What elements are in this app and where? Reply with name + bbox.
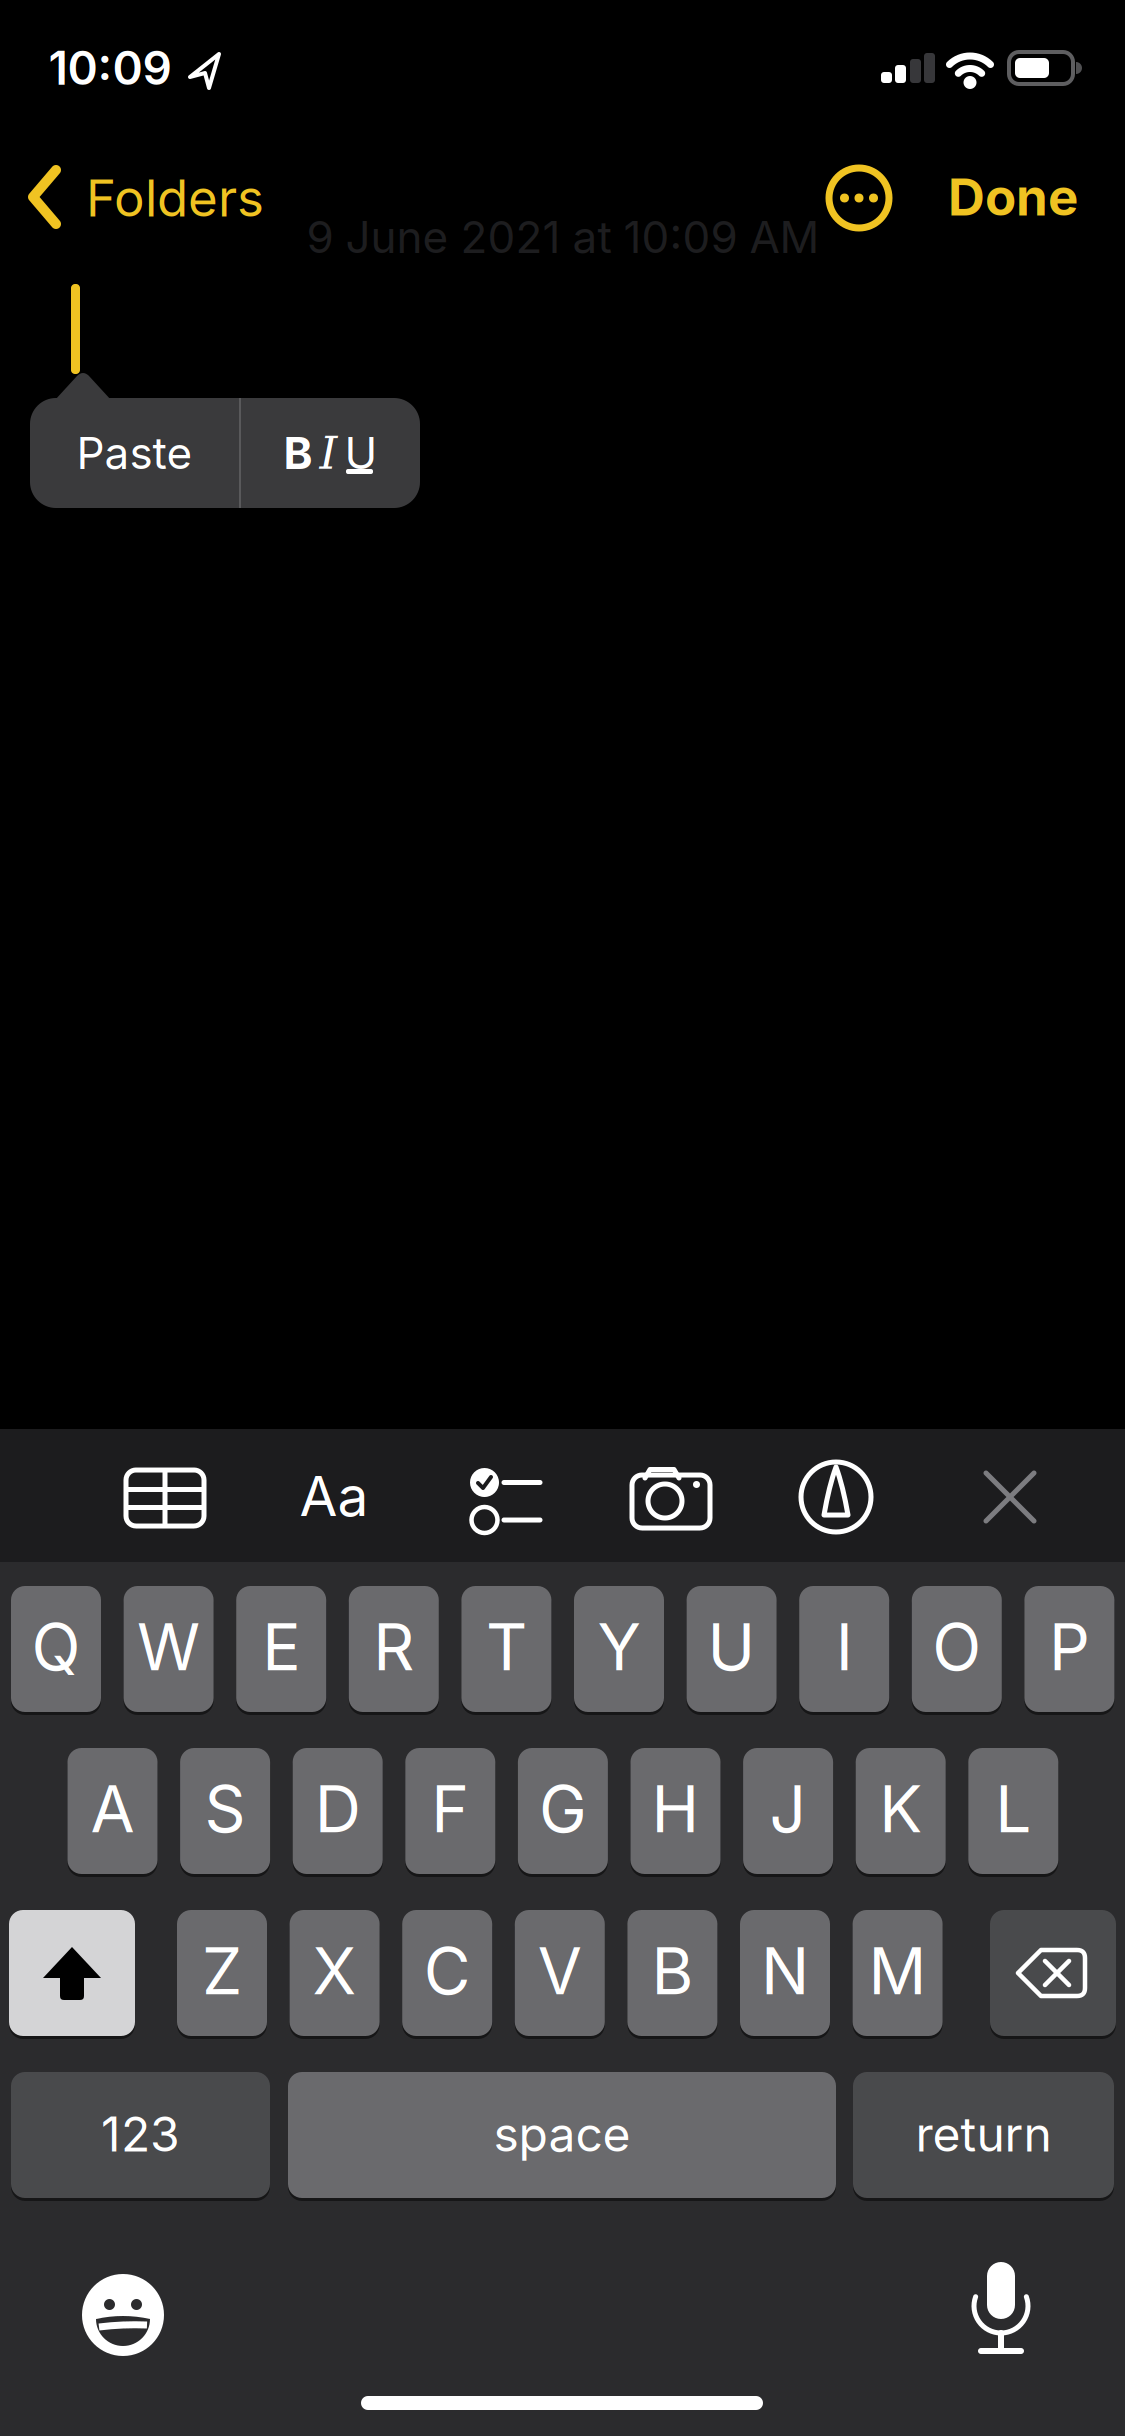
button[interactable]: D xyxy=(293,1748,383,1874)
staticText: R xyxy=(373,1608,414,1686)
button[interactable]: T xyxy=(461,1586,551,1712)
staticText: J xyxy=(770,1770,807,1848)
button[interactable]: H xyxy=(630,1748,720,1874)
button[interactable]: Checklist xyxy=(462,1464,542,1530)
button[interactable]: Y xyxy=(574,1586,664,1712)
staticText: I xyxy=(836,1608,853,1686)
staticText: 123 xyxy=(101,2105,180,2163)
button[interactable]: A xyxy=(67,1748,157,1874)
staticText: B xyxy=(283,426,312,480)
staticText: O xyxy=(932,1608,981,1686)
staticText: T xyxy=(486,1608,527,1686)
button[interactable]: Markup xyxy=(800,1461,872,1533)
staticText: V xyxy=(538,1932,582,2010)
staticText: I xyxy=(319,427,337,479)
button[interactable]: Emoji xyxy=(82,2274,164,2356)
staticText: W xyxy=(137,1608,200,1686)
staticText: X xyxy=(313,1932,357,2010)
button[interactable]: space xyxy=(288,2072,836,2198)
button[interactable]: O xyxy=(912,1586,1002,1712)
button[interactable]: U xyxy=(687,1586,777,1712)
button[interactable]: Paste xyxy=(30,398,239,508)
staticText: N xyxy=(761,1932,809,2010)
button[interactable]: E xyxy=(236,1586,326,1712)
button[interactable]: S xyxy=(180,1748,270,1874)
staticText: return xyxy=(915,2105,1051,2163)
button[interactable]: Formatting xyxy=(241,398,420,508)
button[interactable]: N xyxy=(740,1910,830,2036)
button[interactable]: Insert table xyxy=(124,1466,204,1526)
button[interactable]: F xyxy=(405,1748,495,1874)
staticText: C xyxy=(424,1932,471,2010)
staticText: K xyxy=(879,1770,922,1848)
button[interactable]: Q xyxy=(11,1586,101,1712)
staticText: Paste xyxy=(76,426,192,480)
staticText: D xyxy=(315,1770,361,1848)
staticText: Q xyxy=(31,1608,80,1686)
staticText: E xyxy=(262,1608,300,1686)
staticText: Done xyxy=(948,166,1078,228)
button[interactable]: M xyxy=(853,1910,943,2036)
button[interactable]: P xyxy=(1024,1586,1114,1712)
button[interactable]: K xyxy=(856,1748,946,1874)
button[interactable]: More options xyxy=(829,168,889,228)
staticText: Y xyxy=(597,1608,640,1686)
button[interactable]: Back to Folders xyxy=(29,167,429,229)
button[interactable]: return xyxy=(853,2072,1114,2198)
staticText: 9 June 2021 at 10:09 AM xyxy=(306,210,819,264)
staticText: Aa xyxy=(299,1463,368,1529)
staticText: H xyxy=(651,1770,699,1848)
button[interactable]: Done xyxy=(948,166,1078,228)
staticText: L xyxy=(995,1770,1031,1848)
staticText: S xyxy=(205,1770,246,1848)
button[interactable]: Dismiss keyboard xyxy=(984,1471,1036,1523)
button[interactable]: Z xyxy=(177,1910,267,2036)
button[interactable]: G xyxy=(518,1748,608,1874)
staticText: F xyxy=(431,1770,469,1848)
button[interactable]: 123 xyxy=(11,2072,270,2198)
button[interactable]: I xyxy=(799,1586,889,1712)
button[interactable]: J xyxy=(743,1748,833,1874)
button[interactable]: L xyxy=(968,1748,1058,1874)
staticText: P xyxy=(1049,1608,1090,1686)
button[interactable]: Dictation xyxy=(961,2262,1041,2358)
button[interactable]: W xyxy=(124,1586,214,1712)
button[interactable]: C xyxy=(402,1910,492,2036)
staticText: G xyxy=(539,1770,587,1848)
staticText: 10:09 xyxy=(48,40,171,96)
button[interactable]: V xyxy=(515,1910,605,2036)
staticText: space xyxy=(493,2105,630,2163)
button[interactable]: Shift xyxy=(9,1910,135,2036)
button[interactable]: Delete xyxy=(990,1910,1116,2036)
staticText: Z xyxy=(202,1932,242,2010)
staticText: M xyxy=(869,1932,927,2010)
staticText: A xyxy=(90,1770,134,1848)
staticText: U xyxy=(344,426,377,480)
staticText: B xyxy=(651,1932,693,2010)
button[interactable]: X xyxy=(290,1910,380,2036)
button[interactable]: R xyxy=(349,1586,439,1712)
button[interactable]: B xyxy=(627,1910,717,2036)
button[interactable]: Text styles xyxy=(299,1463,368,1529)
button[interactable]: Insert photo xyxy=(631,1467,713,1529)
staticText: U xyxy=(708,1608,756,1686)
staticText: Folders xyxy=(86,167,264,229)
